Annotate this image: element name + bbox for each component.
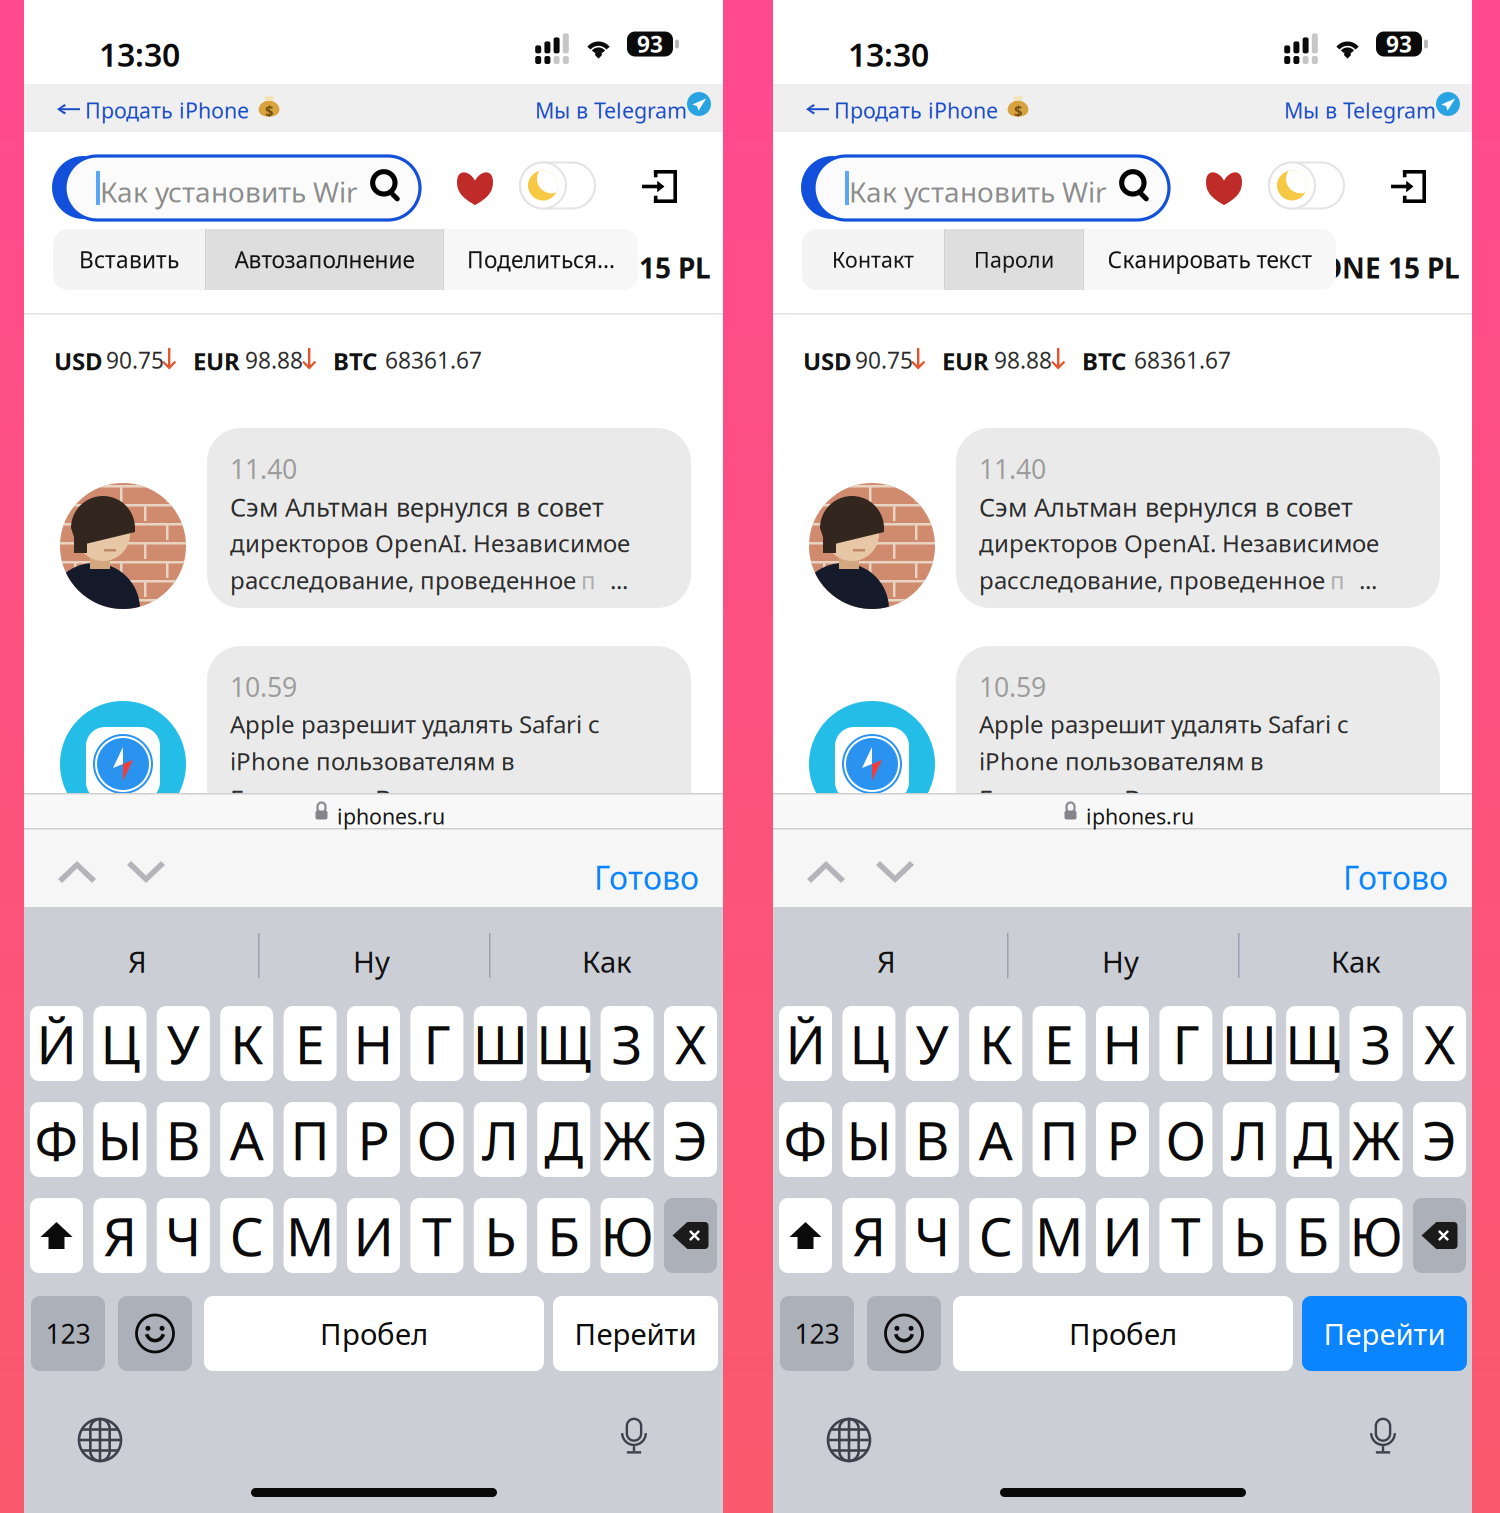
button[interactable]: Поделиться... <box>444 229 638 290</box>
button[interactable]: С <box>220 1198 273 1273</box>
button[interactable]: Мы в Telegram <box>535 96 687 124</box>
button[interactable]: Ч <box>157 1198 210 1273</box>
button[interactable]: П <box>1033 1102 1086 1177</box>
button[interactable]: Д <box>537 1102 590 1177</box>
button[interactable]: Н <box>1096 1006 1149 1081</box>
button[interactable]: Favourites <box>457 172 493 208</box>
button[interactable]: Д <box>1286 1102 1339 1177</box>
button[interactable]: П <box>284 1102 337 1177</box>
button[interactable]: Ю <box>601 1198 654 1273</box>
button[interactable]: Т <box>410 1198 463 1273</box>
button[interactable]: Ы <box>93 1102 146 1177</box>
button[interactable]: Б <box>1286 1198 1339 1273</box>
button[interactable]: Л <box>1223 1102 1276 1177</box>
button[interactable]: Перейти <box>1302 1296 1467 1371</box>
button[interactable]: А <box>220 1102 273 1177</box>
button[interactable]: Telegram <box>687 92 711 116</box>
button[interactable]: Пробел <box>204 1296 544 1371</box>
button[interactable]: Л <box>474 1102 527 1177</box>
button[interactable]: Я <box>128 942 147 981</box>
button[interactable]: Next field <box>127 861 165 883</box>
button[interactable]: З <box>601 1006 654 1081</box>
button[interactable]: Ф <box>779 1102 832 1177</box>
button[interactable]: Контакт <box>802 229 944 290</box>
button[interactable]: Щ <box>1286 1006 1339 1081</box>
button[interactable]: Ну <box>353 942 390 981</box>
button[interactable]: Next field <box>876 861 914 883</box>
button[interactable]: 123 <box>31 1296 105 1371</box>
button[interactable]: Telegram <box>1436 92 1460 116</box>
button[interactable]: Dark mode <box>1269 162 1344 209</box>
button[interactable]: О <box>1159 1102 1212 1177</box>
button[interactable]: Delete <box>664 1198 717 1273</box>
button[interactable]: Э <box>1413 1102 1466 1177</box>
button[interactable]: Готово <box>594 856 699 898</box>
button[interactable]: Ч <box>906 1198 959 1273</box>
button[interactable]: iphones.ru <box>337 802 445 830</box>
button[interactable]: Сканировать текст <box>1084 229 1336 290</box>
button[interactable]: Я <box>93 1198 146 1273</box>
button[interactable]: Ь <box>1223 1198 1276 1273</box>
button[interactable]: З <box>1350 1006 1403 1081</box>
button[interactable]: Log in <box>644 170 677 203</box>
button[interactable]: Вставить <box>53 229 205 290</box>
button[interactable]: Т <box>1159 1198 1212 1273</box>
button[interactable]: Shift <box>30 1198 83 1273</box>
button[interactable]: Как <box>582 942 632 981</box>
button[interactable]: Й <box>30 1006 83 1081</box>
button[interactable]: Готово <box>1343 856 1448 898</box>
button[interactable]: Switch keyboard <box>828 1419 870 1461</box>
button[interactable]: Shift <box>779 1198 832 1273</box>
button[interactable]: Пароли <box>945 229 1082 290</box>
button[interactable]: Р <box>347 1102 400 1177</box>
button[interactable]: Ж <box>601 1102 654 1177</box>
button[interactable]: Dictate <box>1362 1418 1404 1453</box>
button[interactable]: Log in <box>1393 170 1426 203</box>
button[interactable]: У <box>157 1006 210 1081</box>
button[interactable]: И <box>1096 1198 1149 1273</box>
button[interactable]: Продать iPhone <box>834 96 998 124</box>
button[interactable]: Ю <box>1350 1198 1403 1273</box>
button[interactable]: Й <box>779 1006 832 1081</box>
button[interactable]: Previous field <box>58 861 96 883</box>
button[interactable]: Н <box>347 1006 400 1081</box>
button[interactable]: А <box>969 1102 1022 1177</box>
button[interactable]: Щ <box>537 1006 590 1081</box>
button[interactable]: Х <box>664 1006 717 1081</box>
button[interactable]: Я <box>877 942 896 981</box>
button[interactable]: Ну <box>1102 942 1139 981</box>
button[interactable]: Ы <box>842 1102 895 1177</box>
button[interactable]: Е <box>284 1006 337 1081</box>
button[interactable]: iphones.ru <box>1086 802 1194 830</box>
button[interactable]: Ь <box>474 1198 527 1273</box>
button[interactable]: М <box>1033 1198 1086 1273</box>
button[interactable]: В <box>157 1102 210 1177</box>
button[interactable]: Ц <box>842 1006 895 1081</box>
button[interactable]: Ш <box>474 1006 527 1081</box>
button[interactable]: 123 <box>780 1296 854 1371</box>
button[interactable]: Г <box>1159 1006 1212 1081</box>
button[interactable]: Е <box>1033 1006 1086 1081</box>
button[interactable]: Перейти <box>553 1296 718 1371</box>
button[interactable]: Emoji <box>118 1296 192 1371</box>
button[interactable]: В <box>906 1102 959 1177</box>
button[interactable]: Favourites <box>1206 172 1242 208</box>
button[interactable]: У <box>906 1006 959 1081</box>
button[interactable]: Г <box>410 1006 463 1081</box>
button[interactable]: Х <box>1413 1006 1466 1081</box>
button[interactable]: Автозаполнение <box>206 229 442 290</box>
button[interactable]: Пробел <box>953 1296 1293 1371</box>
button[interactable]: К <box>220 1006 273 1081</box>
button[interactable]: Мы в Telegram <box>1284 96 1436 124</box>
button[interactable]: М <box>284 1198 337 1273</box>
button[interactable]: Б <box>537 1198 590 1273</box>
button[interactable]: И <box>347 1198 400 1273</box>
button[interactable]: Продать iPhone <box>85 96 249 124</box>
button[interactable]: Я <box>842 1198 895 1273</box>
button[interactable]: Switch keyboard <box>79 1419 121 1461</box>
button[interactable]: Ж <box>1350 1102 1403 1177</box>
button[interactable]: Ф <box>30 1102 83 1177</box>
button[interactable]: Р <box>1096 1102 1149 1177</box>
button[interactable]: К <box>969 1006 1022 1081</box>
button[interactable]: Delete <box>1413 1198 1466 1273</box>
